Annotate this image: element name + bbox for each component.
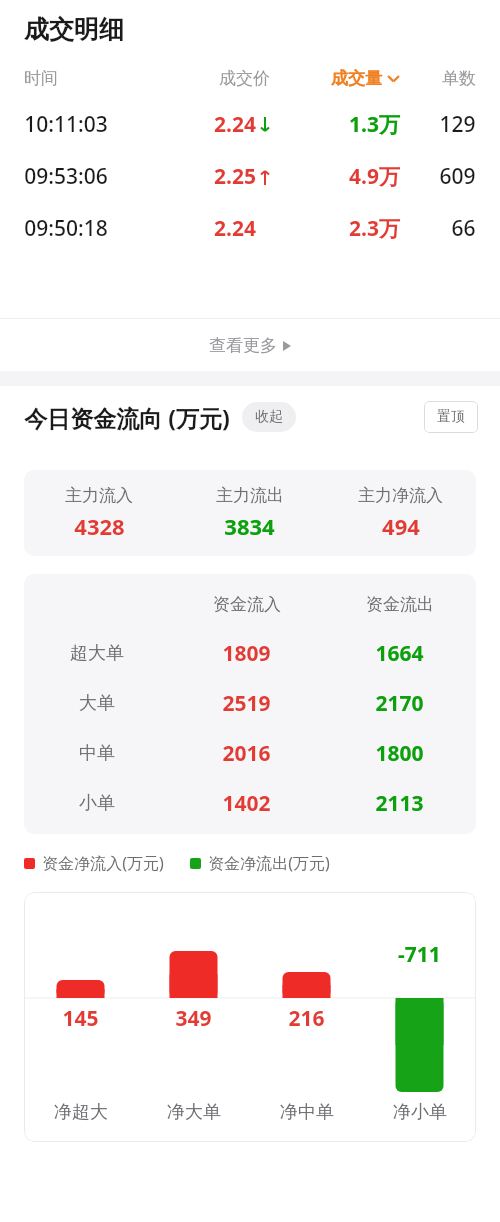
staticText: 主力净流入 bbox=[358, 485, 443, 506]
staticText: 4.9万 bbox=[349, 162, 400, 191]
staticText: 收起 bbox=[255, 408, 283, 426]
staticText: 216 bbox=[288, 1004, 325, 1033]
staticText: 09:50:18 bbox=[24, 214, 108, 243]
staticText: 今日资金流向 (万元) bbox=[24, 402, 230, 433]
staticText: 资金流出 bbox=[366, 594, 434, 615]
staticText: 查看更多 bbox=[209, 335, 277, 356]
staticText: 净中单 bbox=[280, 1101, 334, 1124]
staticText: 成交明细 bbox=[24, 14, 124, 45]
staticText: 主力流入 bbox=[65, 485, 133, 506]
staticText: 主力流出 bbox=[216, 485, 284, 506]
staticText: 资金净流出(万元) bbox=[208, 852, 330, 874]
button[interactable]: 09:53:06 bbox=[0, 150, 500, 202]
staticText: 1.3万 bbox=[349, 110, 400, 139]
staticText: 09:53:06 bbox=[24, 162, 108, 191]
staticText: 1800 bbox=[375, 739, 424, 768]
staticText: 中单 bbox=[79, 742, 115, 765]
staticText: 4328 bbox=[74, 511, 125, 541]
staticText: 10:11:03 bbox=[24, 110, 108, 139]
staticText: 2016 bbox=[222, 739, 271, 768]
staticText: 净大单 bbox=[167, 1101, 221, 1124]
staticText: 1664 bbox=[375, 639, 424, 668]
staticText: 成交价 bbox=[219, 68, 270, 89]
button[interactable]: 主力净流入 bbox=[325, 485, 476, 541]
button[interactable]: 查看更多 bbox=[0, 319, 500, 371]
button[interactable]: 成交量 bbox=[270, 68, 400, 89]
staticText: 145 bbox=[62, 1004, 99, 1033]
staticText: 成交量 bbox=[331, 68, 382, 89]
button[interactable]: 主力流入 bbox=[24, 485, 174, 541]
staticText: 资金净流入(万元) bbox=[42, 852, 164, 874]
staticText: 494 bbox=[382, 511, 420, 541]
staticText: 净超大 bbox=[54, 1101, 108, 1124]
staticText: -711 bbox=[398, 940, 441, 969]
staticText: 置顶 bbox=[437, 408, 465, 426]
button[interactable]: 收起 bbox=[242, 402, 296, 432]
staticText: 2113 bbox=[375, 789, 424, 818]
staticText: 2.24 bbox=[214, 214, 256, 243]
staticText: 66 bbox=[451, 214, 476, 243]
staticText: 2.25 bbox=[214, 162, 256, 191]
button[interactable]: 置顶 bbox=[424, 401, 478, 433]
staticText: 609 bbox=[439, 162, 476, 191]
staticText: 时间 bbox=[24, 68, 58, 89]
staticText: 2.24 bbox=[214, 110, 256, 139]
staticText: 资金流入 bbox=[213, 594, 281, 615]
button[interactable]: 主力流出 bbox=[174, 485, 325, 541]
staticText: 1402 bbox=[222, 789, 271, 818]
staticText: 大单 bbox=[79, 692, 115, 715]
staticText: 超大单 bbox=[70, 642, 124, 665]
staticText: 129 bbox=[439, 110, 476, 139]
staticText: 小单 bbox=[79, 792, 115, 815]
staticText: 单数 bbox=[442, 68, 476, 89]
staticText: 3834 bbox=[224, 511, 275, 541]
staticText: 349 bbox=[175, 1004, 212, 1033]
staticText: 1809 bbox=[222, 639, 271, 668]
staticText: 净小单 bbox=[393, 1101, 447, 1124]
button[interactable]: 09:50:18 bbox=[0, 202, 500, 254]
staticText: 2.3万 bbox=[349, 214, 400, 243]
button[interactable]: 10:11:03 bbox=[0, 98, 500, 150]
staticText: 2519 bbox=[222, 689, 271, 718]
staticText: 2170 bbox=[375, 689, 424, 718]
